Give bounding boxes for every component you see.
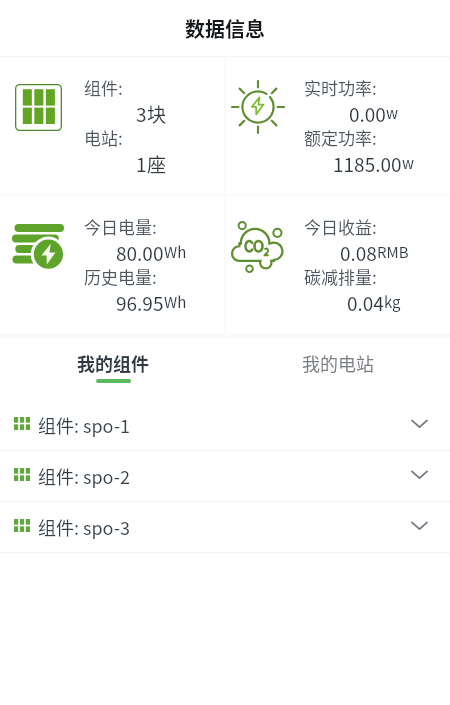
staticText: 1: [136, 150, 147, 175]
staticText: RMB: [377, 241, 409, 263]
staticText: w: [386, 102, 399, 124]
staticText: Wh: [164, 241, 187, 263]
button[interactable]: 我的电站: [225, 338, 450, 400]
staticText: 80.00: [116, 239, 164, 264]
staticText: 0.08: [340, 239, 377, 264]
button[interactable]: 我的组件: [0, 338, 225, 400]
staticText: 3: [136, 100, 147, 125]
staticText: 实时功率:: [304, 75, 377, 100]
staticText: 历史电量:: [84, 264, 157, 289]
staticText: 我的电站: [302, 350, 374, 376]
staticText: 电站:: [84, 125, 123, 150]
staticText: w: [402, 152, 415, 174]
button[interactable]: 组件: spo-1: [0, 400, 450, 450]
staticText: 0.00: [349, 100, 386, 125]
staticText: 今日收益:: [304, 214, 377, 239]
other: Expand: [411, 419, 428, 428]
staticText: Wh: [164, 291, 187, 313]
staticText: 我的组件: [77, 350, 149, 376]
staticText: 座: [147, 150, 167, 175]
staticText: 今日电量:: [84, 214, 157, 239]
staticText: kg: [384, 291, 401, 313]
staticText: 碳减排量:: [304, 264, 377, 289]
staticText: 组件:: [84, 75, 123, 100]
staticText: 组件: spo-2: [38, 463, 130, 489]
staticText: 0.04: [347, 289, 384, 314]
staticText: 组件: spo-1: [38, 412, 130, 438]
staticText: 数据信息: [185, 14, 265, 43]
staticText: 额定功率:: [304, 125, 377, 150]
other: Expand: [411, 521, 428, 530]
button[interactable]: 组件: spo-3: [0, 502, 450, 552]
staticText: 组件: spo-3: [38, 514, 130, 540]
other: Expand: [411, 470, 428, 479]
button[interactable]: 组件: spo-2: [0, 451, 450, 501]
staticText: 块: [147, 100, 167, 125]
staticText: 1185.00: [333, 150, 402, 175]
staticText: 96.95: [116, 289, 164, 314]
